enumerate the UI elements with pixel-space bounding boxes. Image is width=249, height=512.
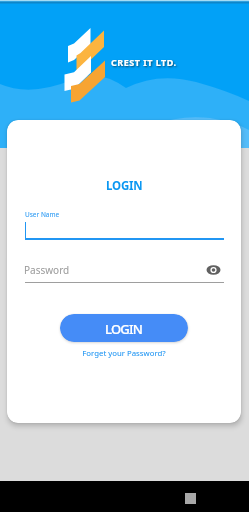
staticText: Forget your Password? <box>82 348 166 359</box>
staticText: Password <box>24 263 70 277</box>
button[interactable]: Forget your Password? <box>7 348 241 359</box>
staticText: User Name <box>25 210 60 219</box>
staticText: LOGIN <box>106 178 143 194</box>
button[interactable] <box>206 264 221 276</box>
staticText: LOGIN <box>105 320 143 338</box>
button[interactable]: LOGIN <box>60 314 188 342</box>
staticText: CREST IT LTD. <box>111 56 177 68</box>
